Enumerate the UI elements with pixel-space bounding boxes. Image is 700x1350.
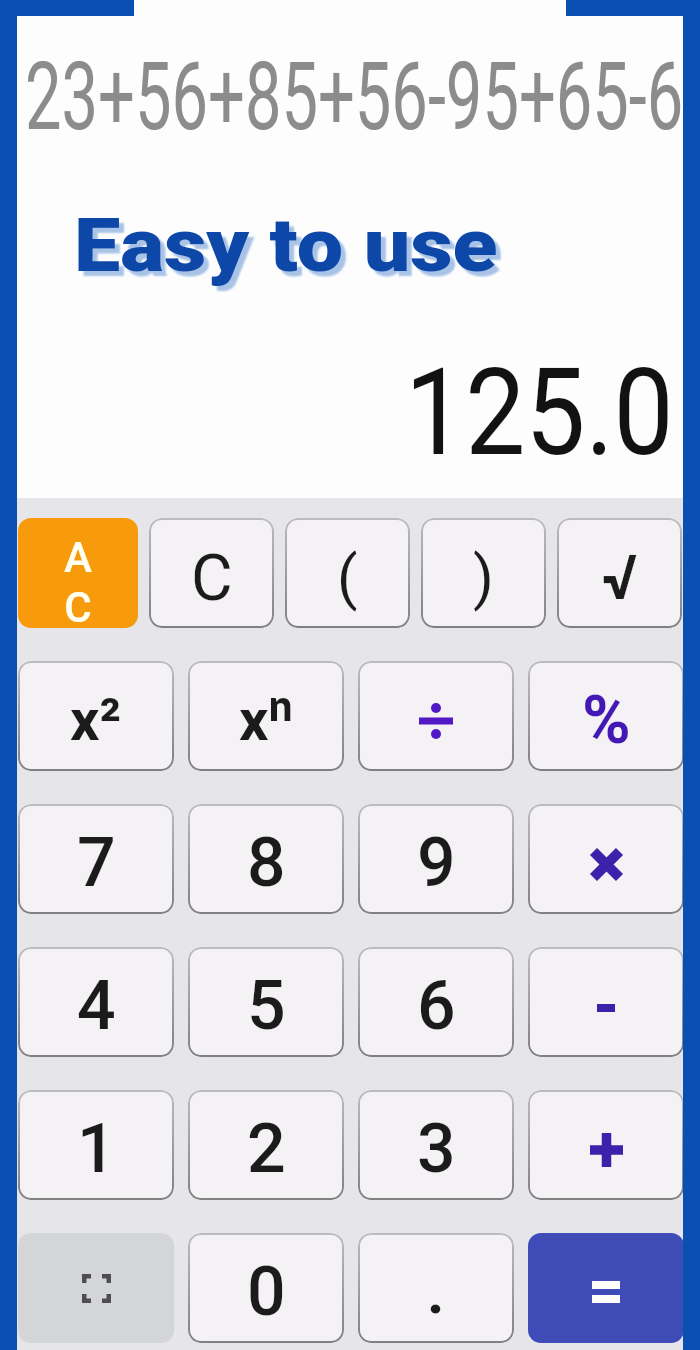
staticText: 6	[417, 966, 456, 1046]
staticText: %	[582, 682, 631, 759]
staticText: (	[337, 542, 358, 612]
button[interactable]: 3	[358, 1090, 514, 1200]
staticText: )	[473, 542, 494, 612]
button[interactable]: 2	[188, 1090, 344, 1200]
staticText: 8	[247, 823, 286, 903]
button[interactable]: 0	[188, 1233, 344, 1343]
button[interactable]: (	[285, 518, 410, 628]
button[interactable]: x²	[18, 661, 174, 771]
button[interactable]	[528, 1090, 684, 1200]
button[interactable]	[528, 804, 684, 914]
staticText: .	[427, 1257, 445, 1327]
staticText: 7	[77, 823, 116, 903]
button[interactable]: 8	[188, 804, 344, 914]
button[interactable]: 7	[18, 804, 174, 914]
button[interactable]: .	[358, 1233, 514, 1343]
staticText: 0	[247, 1252, 286, 1332]
staticText: 125.0	[405, 343, 674, 483]
staticText: 3	[417, 1109, 456, 1189]
staticText: 9	[417, 823, 456, 903]
staticText: 23+56+85+56-95+65-6	[25, 42, 683, 152]
staticText: Easy to use	[74, 202, 498, 289]
button[interactable]: A C	[18, 518, 138, 628]
staticText: 1	[77, 1109, 116, 1189]
button[interactable]: 4	[18, 947, 174, 1057]
staticText: xⁿ	[239, 686, 293, 754]
button[interactable]: xⁿ	[188, 661, 344, 771]
staticText: x²	[70, 686, 122, 754]
button[interactable]: %	[528, 661, 684, 771]
button[interactable]	[528, 947, 684, 1057]
button[interactable]	[528, 1233, 684, 1343]
button[interactable]: 5	[188, 947, 344, 1057]
button[interactable]: 9	[358, 804, 514, 914]
staticText: √	[602, 541, 638, 614]
staticText: 4	[77, 966, 116, 1046]
staticText: 2	[247, 1109, 286, 1189]
button[interactable]: )	[421, 518, 546, 628]
button[interactable]: √	[557, 518, 682, 628]
staticText: 5	[247, 966, 286, 1046]
staticText: C	[191, 541, 233, 616]
button[interactable]	[358, 661, 514, 771]
button[interactable]: 6	[358, 947, 514, 1057]
button[interactable]: 1	[18, 1090, 174, 1200]
button[interactable]	[18, 1233, 174, 1343]
button[interactable]: C	[149, 518, 274, 628]
staticText: A C	[64, 533, 92, 628]
